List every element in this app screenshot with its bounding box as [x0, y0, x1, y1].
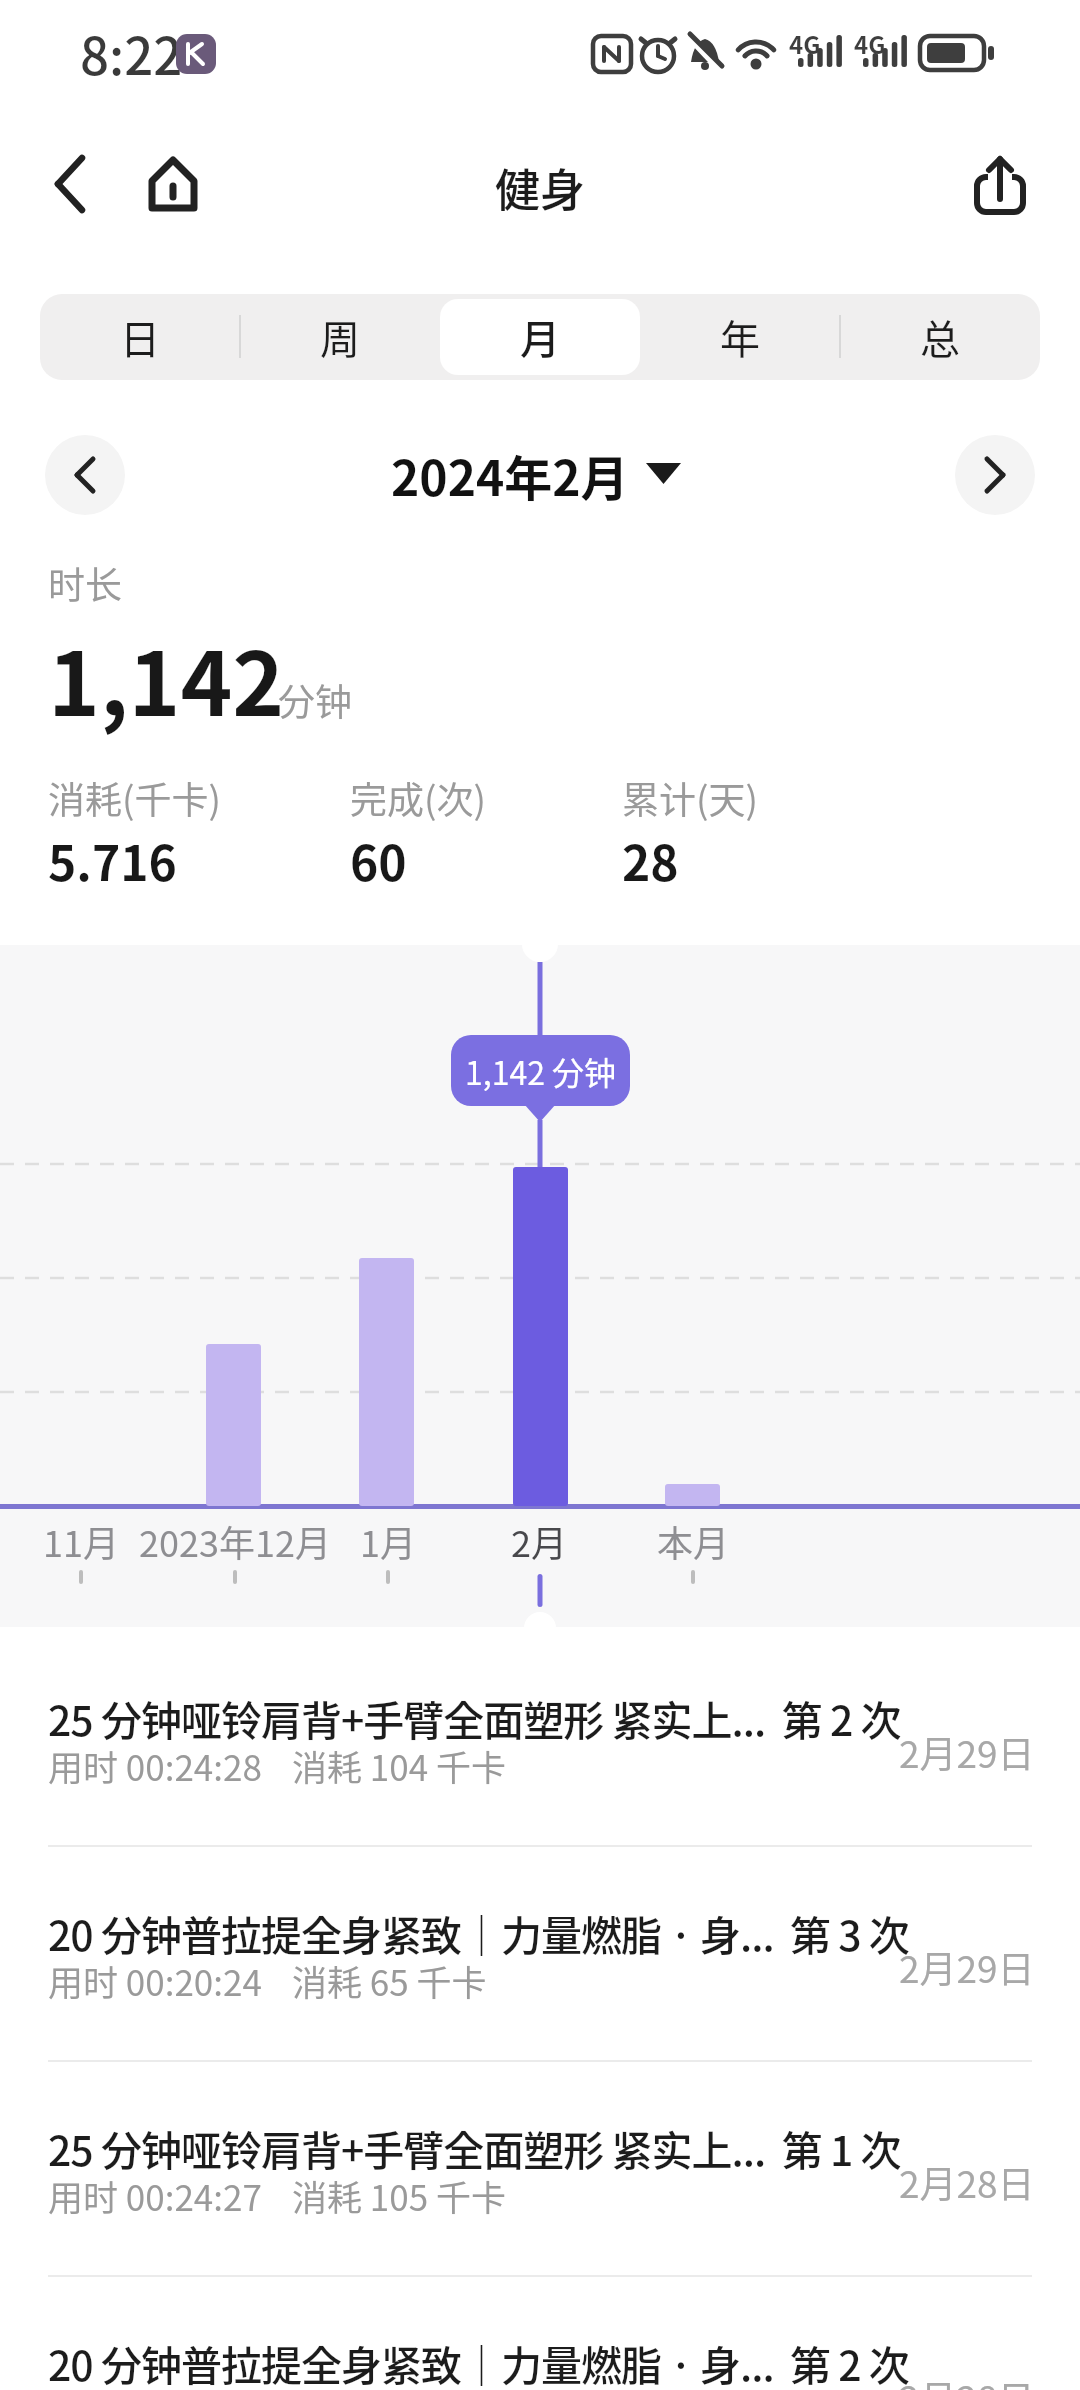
- button[interactable]: [640, 294, 840, 380]
- staticText: 完成(次): [350, 771, 487, 825]
- staticText: 用时 00:20:24: [48, 1955, 262, 2006]
- button[interactable]: [440, 294, 640, 380]
- staticText: 20 分钟普拉提全身紧致｜力量燃脂 · 身... 第 3 次: [48, 1903, 909, 1962]
- staticText: 1,142: [48, 614, 285, 741]
- staticText: 用时 00:24:27: [48, 2170, 262, 2221]
- staticText: 2024年2月: [391, 440, 629, 510]
- staticText: 消耗 105 千卡: [292, 2170, 506, 2221]
- staticText: 4G: [789, 26, 821, 61]
- staticText: 月: [520, 308, 560, 366]
- button[interactable]: [955, 143, 1045, 228]
- staticText: 时长: [48, 556, 122, 610]
- staticText: 1月: [360, 1515, 416, 1567]
- staticText: 2月28日: [899, 2155, 1035, 2209]
- staticText: 5.716: [48, 825, 177, 895]
- button[interactable]: [35, 143, 105, 228]
- staticText: 2月29日: [899, 1725, 1035, 1779]
- button[interactable]: [0, 2092, 1080, 2307]
- button[interactable]: [0, 1662, 1080, 1877]
- staticText: 11月: [43, 1515, 119, 1567]
- staticText: 消耗 104 千卡: [292, 1740, 506, 1791]
- staticText: 周: [320, 308, 360, 366]
- staticText: 25 分钟哑铃肩背+手臂全面塑形 紧实上... 第 1 次: [48, 2118, 901, 2177]
- staticText: 4G: [854, 26, 886, 61]
- staticText: 2月: [511, 1515, 567, 1567]
- staticText: 消耗(千卡): [48, 771, 222, 825]
- button[interactable]: [40, 294, 240, 380]
- staticText: 年: [720, 308, 760, 366]
- button[interactable]: [380, 435, 700, 515]
- staticText: 消耗 66 千卡: [292, 2385, 487, 2390]
- staticText: 2023年12月: [139, 1515, 331, 1567]
- button[interactable]: [240, 294, 440, 380]
- staticText: 1,142 分钟: [465, 1048, 617, 1094]
- button[interactable]: [840, 294, 1040, 380]
- staticText: 28: [622, 825, 679, 895]
- staticText: 健身: [495, 155, 586, 220]
- staticText: 消耗 65 千卡: [292, 1955, 487, 2006]
- button[interactable]: [0, 1877, 1080, 2092]
- staticText: 总: [920, 308, 960, 366]
- staticText: 累计(天): [622, 771, 759, 825]
- button[interactable]: [0, 2307, 1080, 2390]
- button[interactable]: [955, 435, 1035, 515]
- button[interactable]: [130, 143, 215, 228]
- staticText: 2月28日: [899, 2370, 1035, 2390]
- staticText: 2月29日: [899, 1940, 1035, 1994]
- staticText: 20 分钟普拉提全身紧致｜力量燃脂 · 身... 第 2 次: [48, 2333, 909, 2390]
- staticText: 8:22: [80, 16, 183, 90]
- staticText: 用时 00:24:28: [48, 1740, 262, 1791]
- button[interactable]: [45, 435, 125, 515]
- staticText: 60: [350, 825, 407, 895]
- staticText: 日: [120, 308, 160, 366]
- staticText: 分钟: [278, 673, 352, 727]
- staticText: 25 分钟哑铃肩背+手臂全面塑形 紧实上... 第 2 次: [48, 1688, 901, 1747]
- staticText: 本月: [657, 1515, 730, 1567]
